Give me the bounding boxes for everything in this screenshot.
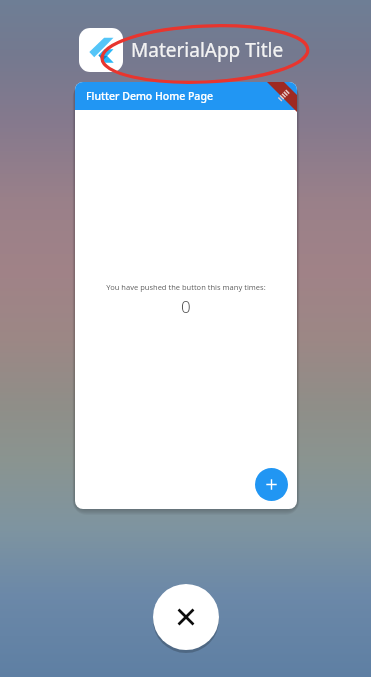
button[interactable]: Close (153, 584, 219, 650)
button[interactable]: Flutter Demo Home Page (75, 82, 297, 110)
staticText: Flutter Demo Home Page (86, 89, 213, 103)
button[interactable]: Increment (255, 468, 288, 501)
button[interactable] (79, 28, 123, 72)
staticText: You have pushed the button this many tim… (106, 282, 266, 292)
staticText: 0 (181, 295, 191, 318)
staticText: MaterialApp Title (131, 37, 284, 63)
